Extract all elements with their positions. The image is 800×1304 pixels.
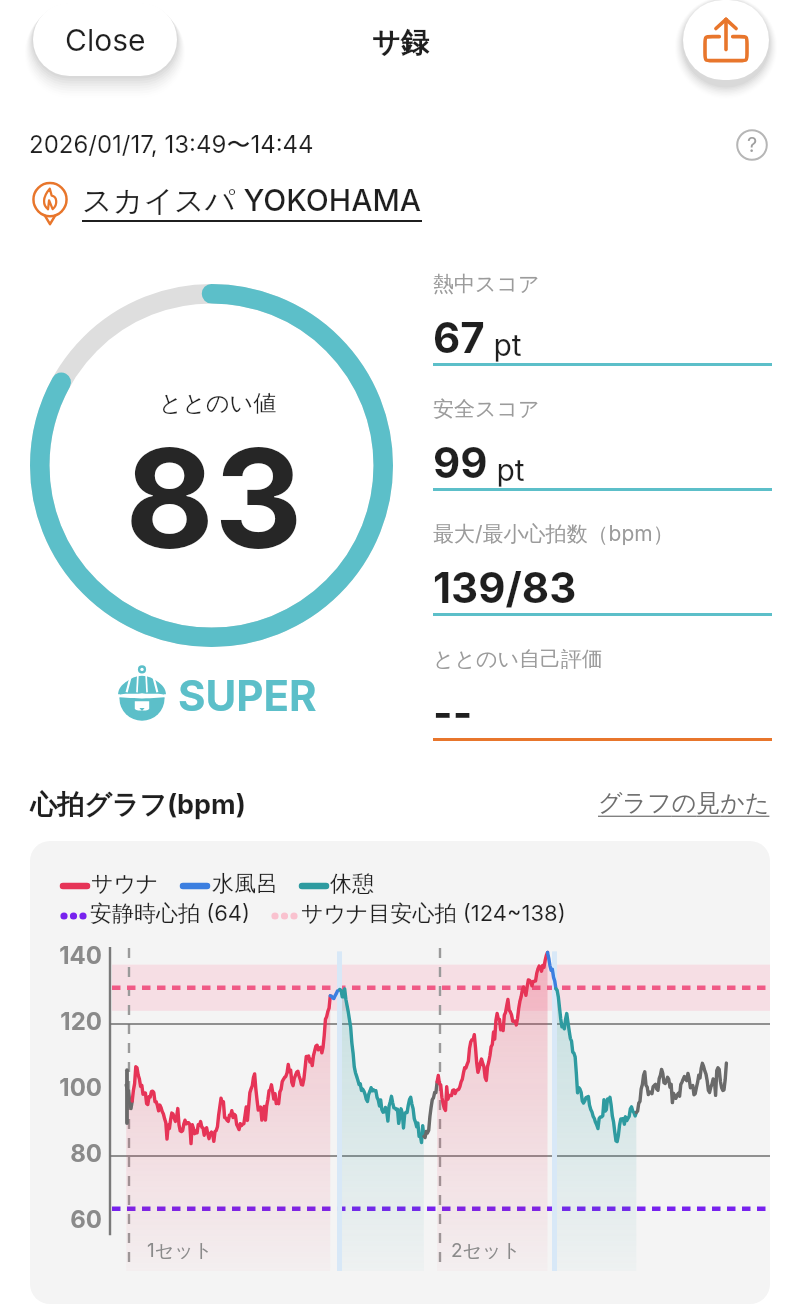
staticText: サウナ bbox=[91, 870, 159, 898]
staticText: 水風呂 bbox=[212, 870, 278, 898]
staticText: -- bbox=[433, 687, 473, 738]
staticText: 140 bbox=[30, 941, 102, 970]
staticText: 熱中スコア bbox=[433, 271, 540, 297]
button[interactable]: スカイスパ YOKOHAMA bbox=[26, 174, 422, 230]
staticText: SUPER bbox=[178, 670, 317, 721]
button[interactable]: グラフの見かた bbox=[598, 792, 770, 822]
staticText: 67 bbox=[433, 312, 485, 363]
staticText: 83 bbox=[125, 415, 303, 581]
staticText: ととのい自己評価 bbox=[433, 646, 603, 672]
staticText: ? bbox=[747, 133, 758, 157]
staticText: pt bbox=[488, 452, 525, 488]
staticText: pt bbox=[485, 327, 522, 363]
staticText: 休憩 bbox=[330, 870, 374, 898]
staticText: サ録 bbox=[372, 25, 429, 60]
staticText: ととのい値 bbox=[159, 389, 277, 418]
staticText: 最大/最小心拍数（bpm） bbox=[433, 521, 674, 548]
button[interactable]: Close bbox=[33, 3, 177, 76]
button[interactable]: Share bbox=[683, 0, 769, 80]
staticText: サウナ目安心拍 (124~138) bbox=[301, 900, 566, 928]
staticText: 120 bbox=[30, 1007, 102, 1036]
staticText: 60 bbox=[30, 1205, 102, 1234]
staticText: 139/83 bbox=[433, 562, 577, 613]
staticText: 安静時心拍 (64) bbox=[90, 900, 251, 928]
staticText: 100 bbox=[30, 1073, 102, 1102]
staticText: 2セット bbox=[451, 1239, 521, 1263]
staticText: 1セット bbox=[147, 1239, 214, 1263]
staticText: 2026/01/17, 13:49〜14:44 bbox=[29, 130, 314, 160]
staticText: 80 bbox=[30, 1139, 102, 1168]
staticText: スカイスパ YOKOHAMA bbox=[82, 182, 422, 220]
button[interactable]: Help bbox=[732, 127, 772, 163]
staticText: Close bbox=[65, 22, 146, 58]
staticText: 安全スコア bbox=[433, 396, 540, 422]
staticText: 99 bbox=[433, 437, 488, 488]
staticText: 心拍グラフ(bpm) bbox=[30, 788, 246, 822]
